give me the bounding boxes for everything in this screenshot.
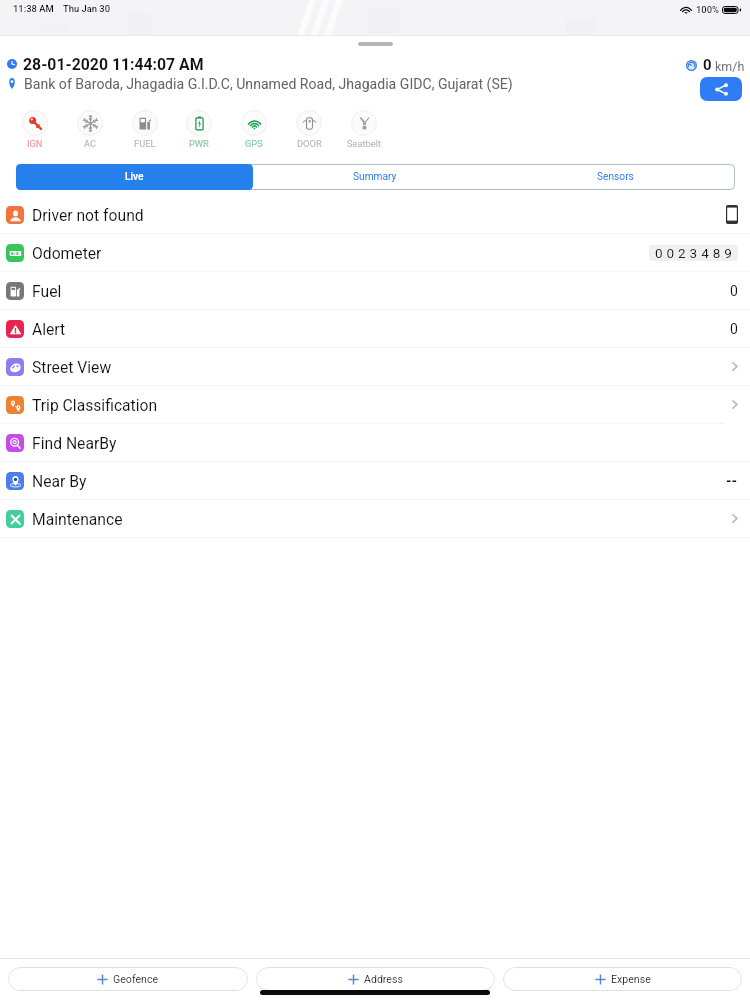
staticText: Seatbelt xyxy=(347,138,382,149)
other: Call driver xyxy=(726,205,738,224)
button[interactable]: Fuel xyxy=(0,272,750,310)
staticText: 0 xyxy=(703,56,712,74)
button[interactable]: Street View xyxy=(0,348,750,386)
button[interactable]: Find NearBy xyxy=(0,424,750,462)
staticText: PWR xyxy=(189,138,209,149)
button[interactable]: Expense xyxy=(503,967,742,991)
button[interactable]: Driver not found xyxy=(0,196,750,234)
staticText: DOOR xyxy=(297,138,322,149)
button[interactable]: Seatbelt xyxy=(337,110,391,149)
button[interactable]: Summary xyxy=(255,164,495,190)
staticText: Maintenance xyxy=(32,510,123,528)
button[interactable]: GPS xyxy=(227,110,281,149)
staticText: Driver not found xyxy=(32,206,144,224)
staticText: Street View xyxy=(32,358,112,376)
staticText: Address xyxy=(364,973,403,985)
staticText: Live xyxy=(125,171,144,183)
button[interactable]: Live xyxy=(16,164,253,190)
button[interactable]: AC xyxy=(63,110,117,149)
staticText: Summary xyxy=(353,171,397,183)
button[interactable]: PWR xyxy=(172,110,226,149)
staticText: FUEL xyxy=(134,138,156,149)
staticText: 28-01-2020 11:44:07 AM xyxy=(23,55,204,74)
button[interactable]: DOOR xyxy=(282,110,336,149)
staticText: 100% xyxy=(696,4,719,15)
staticText: Bank of Baroda, Jhagadia G.I.D.C, Unname… xyxy=(24,76,513,93)
staticText: Thu Jan 30 xyxy=(63,3,111,14)
staticText: -- xyxy=(726,473,738,489)
staticText: 0 xyxy=(730,321,738,337)
staticText: 0 0 2 3 4 8 9 xyxy=(655,245,733,261)
staticText: Expense xyxy=(611,973,651,985)
staticText: Alert xyxy=(32,320,66,338)
staticText: Trip Classification xyxy=(32,396,158,414)
staticText: IGN xyxy=(27,138,43,149)
button[interactable]: Odometer xyxy=(0,234,750,272)
staticText: GPS xyxy=(245,138,263,149)
button[interactable]: Share xyxy=(700,77,742,101)
button[interactable]: Near By xyxy=(0,462,750,500)
staticText: 11:38 AM xyxy=(13,3,54,14)
button[interactable]: Sensors xyxy=(495,164,735,190)
button[interactable]: Maintenance xyxy=(0,500,750,538)
staticText: km/h xyxy=(715,59,745,74)
button[interactable]: Address xyxy=(256,967,495,991)
button[interactable]: Alert xyxy=(0,310,750,348)
staticText: Near By xyxy=(32,472,87,490)
button[interactable]: Trip Classification xyxy=(0,386,750,424)
button[interactable]: Geofence xyxy=(8,967,248,991)
staticText: 0 xyxy=(730,283,738,299)
staticText: Fuel xyxy=(32,282,62,300)
staticText: Find NearBy xyxy=(32,434,117,452)
staticText: Sensors xyxy=(597,171,634,183)
staticText: AC xyxy=(84,138,97,149)
button[interactable]: FUEL xyxy=(118,110,172,149)
button[interactable]: IGN xyxy=(8,110,62,149)
staticText: Geofence xyxy=(113,973,159,985)
staticText: Odometer xyxy=(32,244,102,262)
